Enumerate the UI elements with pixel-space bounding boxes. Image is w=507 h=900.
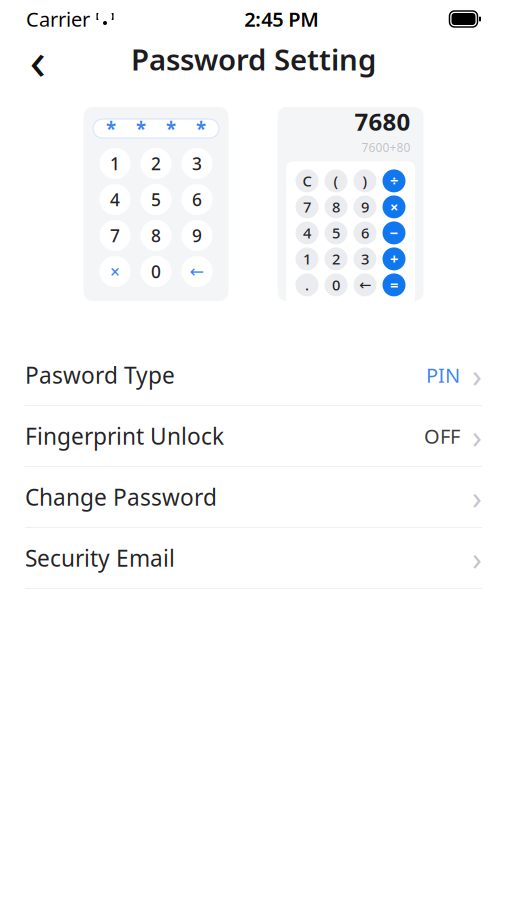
staticText: Fingerprint Unlock xyxy=(25,421,224,451)
staticText: 3 xyxy=(361,249,369,269)
staticText: 7 xyxy=(303,197,311,217)
staticText: ( xyxy=(333,171,338,191)
staticText: − xyxy=(389,223,398,243)
button[interactable]: Security Email xyxy=(0,528,507,589)
staticText: 2 xyxy=(151,152,161,175)
staticText: 2 xyxy=(332,249,340,269)
staticText: 0 xyxy=(151,260,161,283)
staticText: ← xyxy=(359,277,371,293)
staticText: * xyxy=(166,116,176,141)
staticText: OFF xyxy=(424,423,460,449)
staticText: * xyxy=(196,116,206,141)
staticText: ← xyxy=(189,262,204,281)
staticText: Security Email xyxy=(25,543,175,573)
button[interactable]: Pasword Type xyxy=(0,345,507,406)
staticText: ) xyxy=(362,171,367,191)
staticText: 0 xyxy=(332,275,340,295)
staticText: . xyxy=(305,275,309,295)
staticText: 7680 xyxy=(354,106,410,137)
staticText: 1 xyxy=(110,152,120,175)
staticText: 8 xyxy=(332,197,340,217)
staticText: 5 xyxy=(332,223,340,243)
staticText: * xyxy=(136,116,146,141)
staticText: 1 xyxy=(303,249,311,269)
staticText: C xyxy=(302,171,311,191)
staticText: › xyxy=(472,476,482,518)
staticText: + xyxy=(390,249,398,269)
staticText: ‹ xyxy=(29,24,46,94)
staticText: 8 xyxy=(151,224,161,247)
staticText: 9 xyxy=(361,197,369,217)
staticText: 4 xyxy=(110,188,120,211)
staticText: 9 xyxy=(192,224,202,247)
staticText: = xyxy=(390,275,398,295)
staticText: › xyxy=(472,415,482,457)
staticText: × xyxy=(110,260,120,283)
button[interactable]: Back xyxy=(16,37,60,81)
staticText: › xyxy=(472,354,482,396)
button[interactable]: Fingerprint Unlock xyxy=(0,406,507,467)
staticText: Password Setting xyxy=(131,39,376,78)
staticText: Pasword Type xyxy=(25,360,175,390)
staticText: 4 xyxy=(303,223,311,243)
staticText: Change Password xyxy=(25,482,217,512)
staticText: ÷ xyxy=(390,171,398,191)
staticText: 2:45 PM xyxy=(244,6,319,32)
staticText: Carrier xyxy=(26,6,90,32)
staticText: × xyxy=(390,197,398,217)
staticText: 3 xyxy=(192,152,202,175)
button[interactable]: Change Password xyxy=(0,467,507,528)
staticText: 7 xyxy=(110,224,120,247)
staticText: 7600+80 xyxy=(361,139,410,155)
staticText: 5 xyxy=(151,188,161,211)
staticText: 6 xyxy=(361,223,369,243)
staticText: * xyxy=(106,116,116,141)
staticText: › xyxy=(472,537,482,579)
staticText: PIN xyxy=(426,362,460,388)
staticText: 6 xyxy=(192,188,202,211)
